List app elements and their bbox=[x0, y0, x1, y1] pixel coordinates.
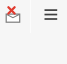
button[interactable]: Menu bbox=[43, 8, 58, 22]
button[interactable]: Unread mail bbox=[4, 4, 24, 26]
